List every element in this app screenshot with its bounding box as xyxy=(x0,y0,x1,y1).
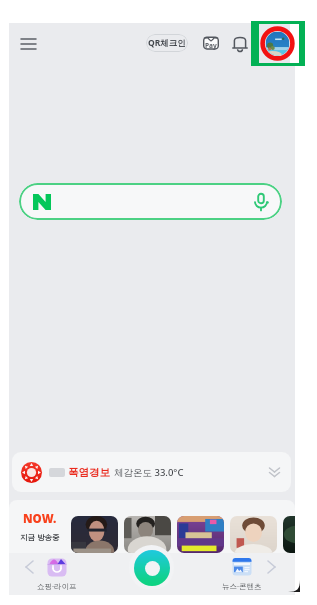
staticText: 뉴스·콘텐츠 xyxy=(222,581,262,591)
button[interactable]: 쇼핑·라이프 xyxy=(32,557,82,591)
staticText: Pay xyxy=(205,41,217,50)
button[interactable]: Home xyxy=(129,545,174,590)
staticText: 폭염경보 xyxy=(68,466,110,479)
button[interactable] xyxy=(230,516,277,553)
staticText: NOW. xyxy=(23,511,57,527)
button[interactable]: Notifications xyxy=(230,33,250,53)
button[interactable] xyxy=(71,516,118,553)
button[interactable]: Naver Pay xyxy=(200,33,222,53)
button[interactable]: Profile xyxy=(251,21,305,66)
button[interactable]: Menu xyxy=(13,28,43,60)
staticText: 지금 방송중 xyxy=(20,532,60,542)
button[interactable]: 폭염경보 xyxy=(12,452,291,492)
button[interactable]: Next xyxy=(261,557,281,577)
button[interactable]: NOW. xyxy=(14,507,66,545)
button[interactable] xyxy=(177,516,224,553)
button[interactable] xyxy=(283,516,295,553)
button[interactable]: QR체크인 xyxy=(146,34,188,52)
staticText: QR체크인 xyxy=(148,37,186,49)
button[interactable]: Voice search xyxy=(19,183,282,220)
button[interactable]: Voice search xyxy=(250,191,272,213)
button[interactable] xyxy=(124,516,171,553)
button[interactable]: 뉴스·콘텐츠 xyxy=(217,557,267,591)
staticText: 쇼핑·라이프 xyxy=(37,581,77,591)
button[interactable]: Previous xyxy=(19,557,39,577)
staticText: 체감온도 33.0°C xyxy=(114,466,184,479)
